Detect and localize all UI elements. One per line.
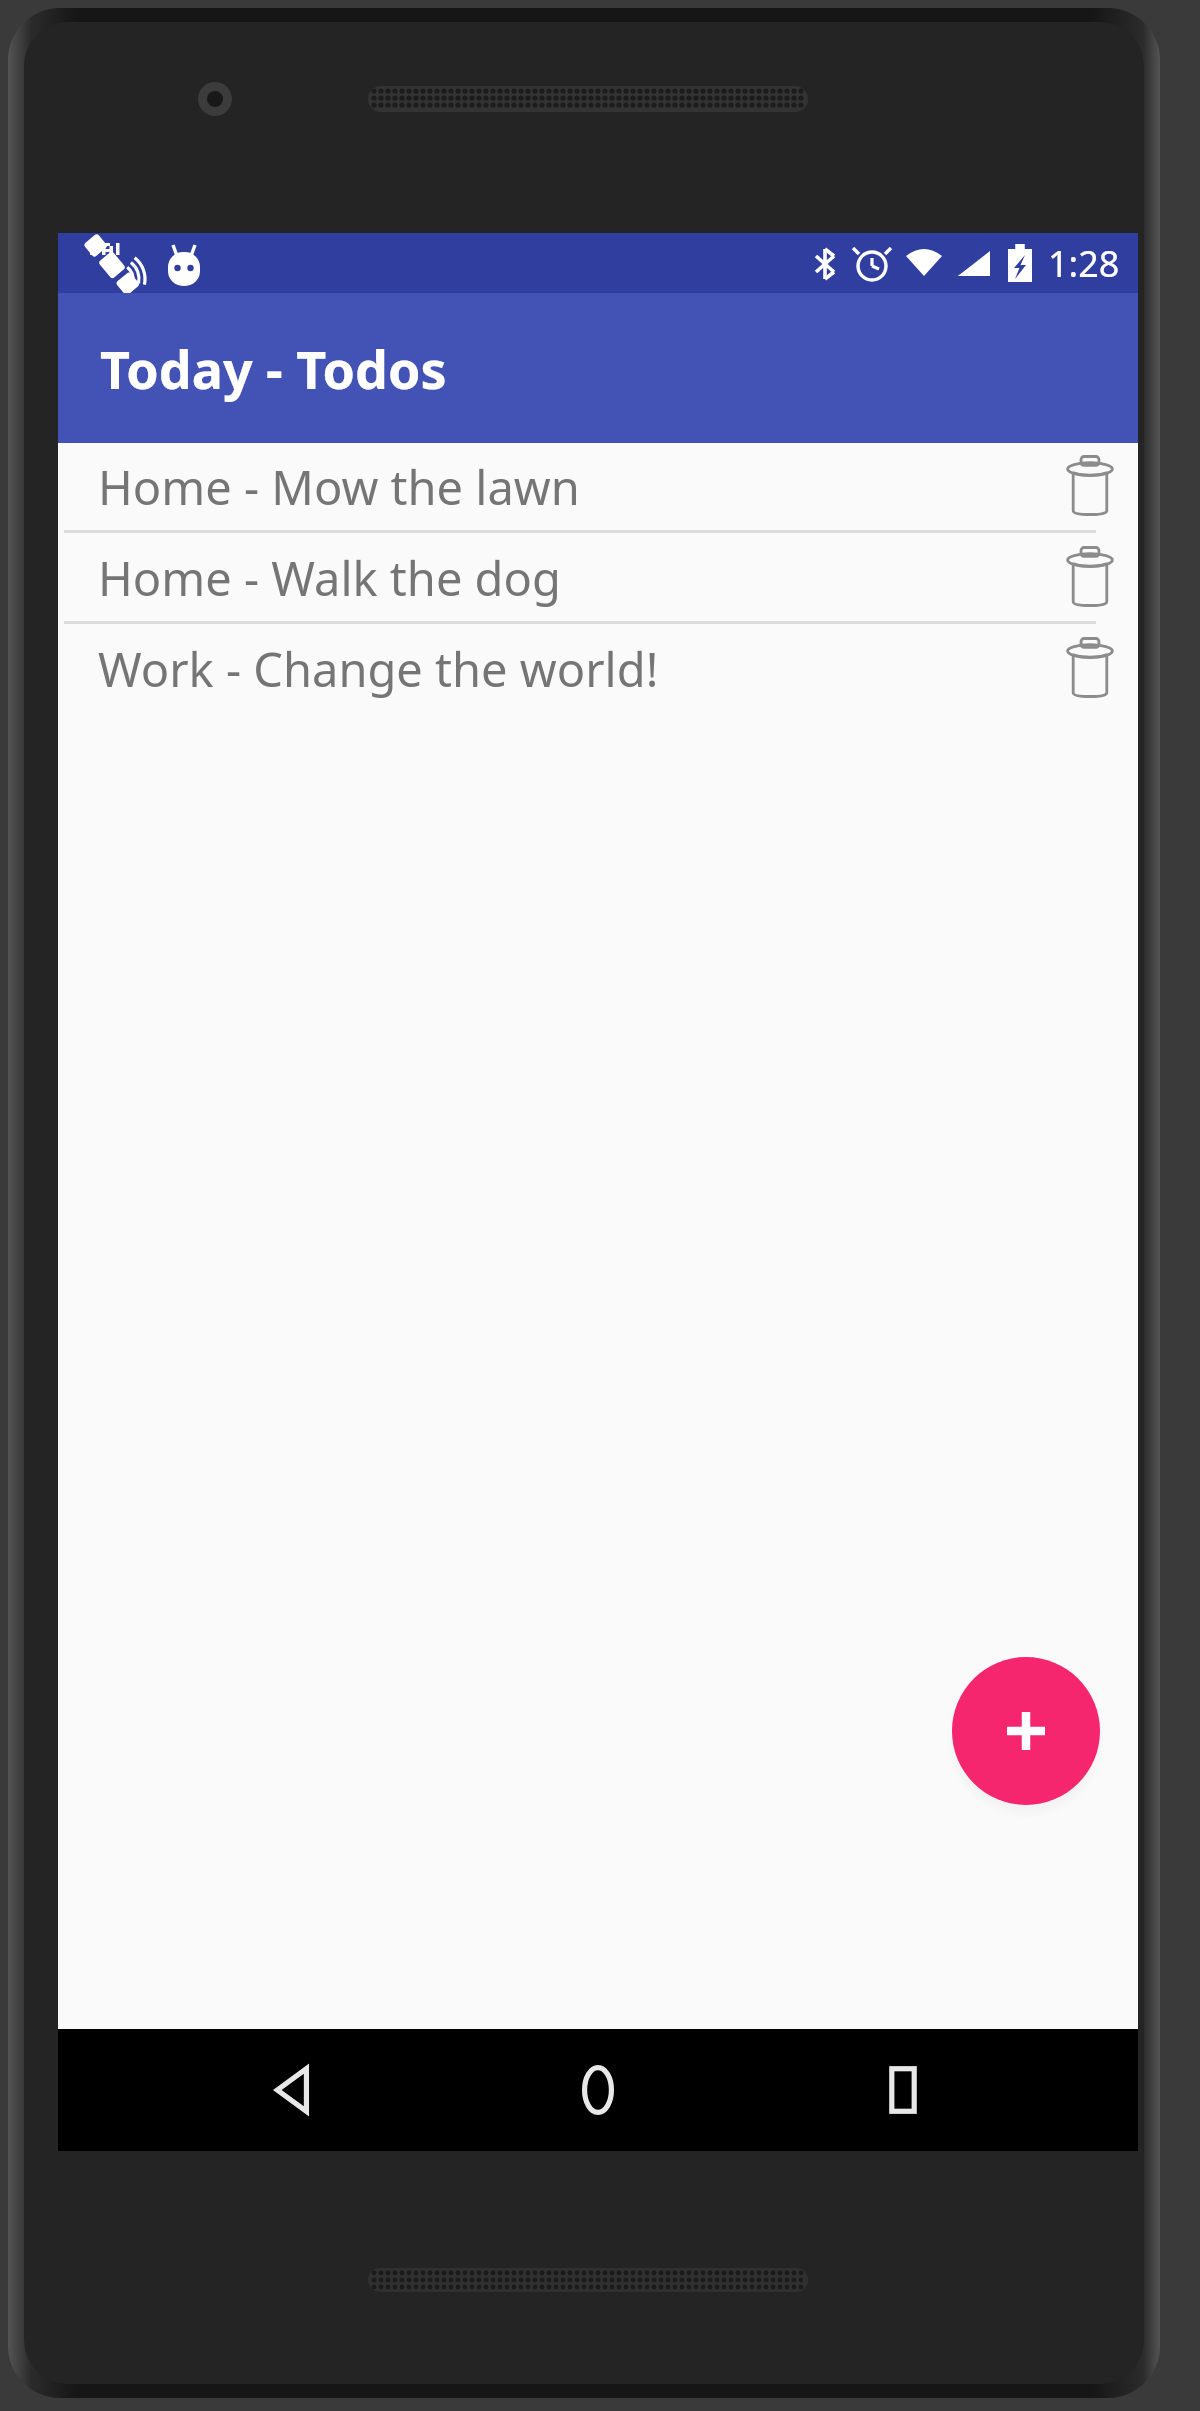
- staticText: Today - Todos: [100, 333, 447, 404]
- button[interactable]: Add todo: [952, 1657, 1100, 1805]
- button[interactable]: Delete: [1042, 443, 1138, 530]
- button[interactable]: Home - Walk the dog: [58, 534, 1138, 621]
- staticText: Home - Mow the lawn: [98, 455, 1042, 519]
- staticText: Work - Change the world!: [98, 637, 1042, 701]
- button[interactable]: Delete: [1042, 534, 1138, 621]
- staticText: Home - Walk the dog: [98, 546, 1042, 610]
- button[interactable]: Recents: [833, 2029, 973, 2151]
- button[interactable]: Home - Mow the lawn: [58, 443, 1138, 530]
- button[interactable]: Home: [528, 2029, 668, 2151]
- button[interactable]: Work - Change the world!: [58, 625, 1138, 712]
- button[interactable]: Back: [223, 2029, 363, 2151]
- button[interactable]: Delete: [1042, 625, 1138, 712]
- staticText: 1:28: [1048, 239, 1120, 288]
